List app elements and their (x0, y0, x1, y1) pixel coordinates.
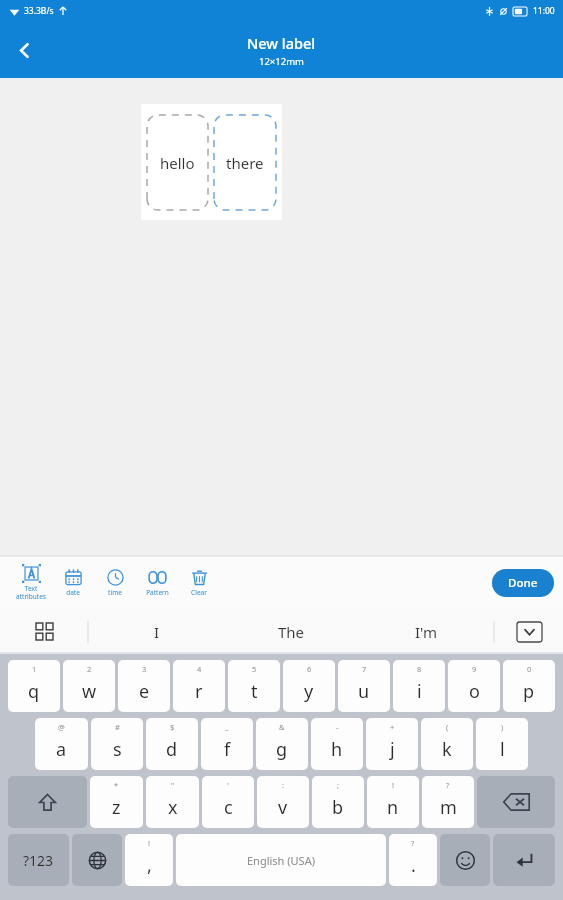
staticText: I (154, 622, 160, 642)
staticText: ; (337, 780, 340, 790)
staticText: 33.3B/s (24, 5, 54, 17)
button[interactable]: there (214, 115, 276, 210)
staticText: 8 (417, 664, 422, 674)
staticText: 9 (472, 664, 477, 674)
button[interactable]: " (146, 776, 199, 828)
staticText: + (390, 722, 395, 732)
staticText: ? (446, 780, 450, 790)
staticText: ) (501, 722, 504, 732)
staticText: ( (446, 722, 449, 732)
staticText: , (147, 853, 152, 878)
button[interactable]: Backspace (477, 776, 555, 828)
staticText: " (171, 780, 175, 790)
button[interactable]: 7 (338, 660, 390, 712)
button[interactable]: time (94, 556, 136, 609)
button[interactable]: Back (0, 26, 48, 74)
button[interactable]: - (311, 718, 363, 770)
button[interactable]: 5 (228, 660, 280, 712)
staticText: : (282, 780, 285, 790)
button[interactable]: Enter (493, 834, 555, 886)
staticText: . (411, 853, 416, 878)
staticText: date (66, 588, 80, 597)
staticText: d (166, 737, 178, 762)
staticText: 5 (252, 664, 257, 674)
staticText: hello (160, 153, 195, 173)
button[interactable]: ; (312, 776, 364, 828)
staticText: b (332, 795, 344, 820)
button[interactable]: + (366, 718, 418, 770)
button[interactable]: 1 (8, 660, 60, 712)
button[interactable]: Done (492, 569, 554, 597)
button[interactable]: Clipboard (0, 609, 88, 654)
staticText: l (500, 737, 505, 762)
button[interactable]: 6 (283, 660, 335, 712)
staticText: g (276, 737, 288, 762)
button[interactable]: hello (147, 115, 208, 210)
staticText: m (440, 795, 457, 820)
staticText: ?123 (23, 851, 54, 870)
button[interactable]: 3 (118, 660, 170, 712)
button[interactable]: I'm (359, 609, 494, 654)
button[interactable]: I (89, 609, 224, 654)
staticText: 3 (142, 664, 147, 674)
staticText: a (56, 737, 67, 762)
staticText: 2 (87, 664, 92, 674)
button[interactable]: ? (389, 834, 437, 886)
staticText: z (112, 795, 121, 820)
staticText: _ (225, 722, 229, 732)
button[interactable]: ?123 (8, 834, 69, 886)
button[interactable]: 9 (448, 660, 500, 712)
staticText: The (278, 622, 305, 642)
staticText: * (114, 780, 119, 790)
button[interactable]: * (90, 776, 143, 828)
staticText: t (251, 679, 258, 704)
staticText: ' (227, 780, 229, 790)
staticText: Text attributes (16, 584, 46, 601)
staticText: c (224, 795, 233, 820)
button[interactable]: # (91, 718, 143, 770)
staticText: Done (508, 575, 538, 591)
staticText: e (139, 679, 150, 704)
staticText: ! (148, 838, 151, 848)
button[interactable]: 8 (393, 660, 445, 712)
button[interactable]: Clear (178, 556, 220, 609)
button[interactable]: 2 (63, 660, 115, 712)
button[interactable]: Text attributes (10, 556, 52, 609)
button[interactable]: ! (125, 834, 173, 886)
button[interactable]: ' (202, 776, 254, 828)
staticText: s (113, 737, 122, 762)
staticText: x (168, 795, 178, 820)
staticText: Pattern (146, 588, 169, 597)
button[interactable]: date (52, 556, 94, 609)
button[interactable]: $ (146, 718, 198, 770)
staticText: 6 (307, 664, 312, 674)
staticText: 7 (362, 664, 367, 674)
button[interactable]: Hide keyboard (495, 609, 563, 654)
button[interactable]: : (257, 776, 309, 828)
staticText: - (336, 722, 339, 732)
button[interactable]: ( (421, 718, 473, 770)
button[interactable]: & (256, 718, 308, 770)
button[interactable]: Shift (8, 776, 87, 828)
button[interactable]: 4 (173, 660, 225, 712)
button[interactable]: Emoji (440, 834, 490, 886)
button[interactable]: Pattern (136, 556, 178, 609)
button[interactable]: Change language (72, 834, 122, 886)
staticText: there (226, 153, 264, 173)
button[interactable]: ! (367, 776, 419, 828)
staticText: # (115, 722, 120, 732)
button[interactable]: @ (35, 718, 88, 770)
staticText: r (195, 679, 203, 704)
button[interactable]: _ (201, 718, 253, 770)
staticText: f (224, 737, 231, 762)
button[interactable]: ) (476, 718, 528, 770)
staticText: q (28, 679, 40, 704)
staticText: 1 (32, 664, 37, 674)
button[interactable]: 0 (503, 660, 555, 712)
button[interactable]: ? (422, 776, 474, 828)
staticText: & (279, 722, 285, 732)
button[interactable]: The (224, 609, 359, 654)
staticText: h (331, 737, 343, 762)
button[interactable]: English (USA) (176, 834, 386, 886)
staticText: I'm (415, 622, 438, 642)
